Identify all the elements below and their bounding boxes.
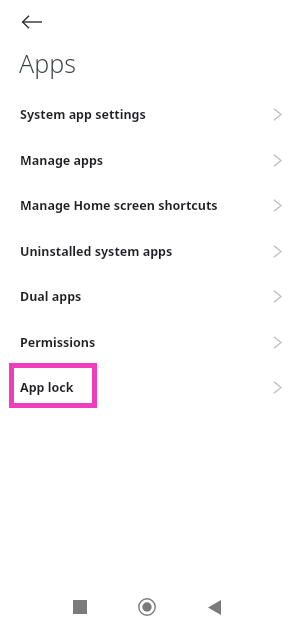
staticText: Dual apps <box>20 288 82 305</box>
staticText: Uninstalled system apps <box>20 243 173 260</box>
button[interactable]: Dual apps <box>0 273 294 319</box>
button[interactable]: Back <box>192 586 237 628</box>
staticText: Apps <box>19 46 76 80</box>
button[interactable]: Uninstalled system apps <box>0 228 294 274</box>
staticText: Manage Home screen shortcuts <box>20 197 218 214</box>
staticText: Permissions <box>20 334 96 351</box>
staticText: App lock <box>20 379 74 396</box>
staticText: System app settings <box>20 106 146 123</box>
button[interactable]: System app settings <box>0 91 294 137</box>
staticText: Manage apps <box>20 152 104 169</box>
button[interactable]: Back <box>14 8 50 36</box>
button[interactable]: Manage Home screen shortcuts <box>0 182 294 228</box>
button[interactable]: Permissions <box>0 319 294 365</box>
button[interactable]: App lock <box>0 364 294 410</box>
button[interactable]: Manage apps <box>0 137 294 183</box>
button[interactable]: Home <box>124 586 170 628</box>
button[interactable]: Recent apps <box>57 586 102 628</box>
